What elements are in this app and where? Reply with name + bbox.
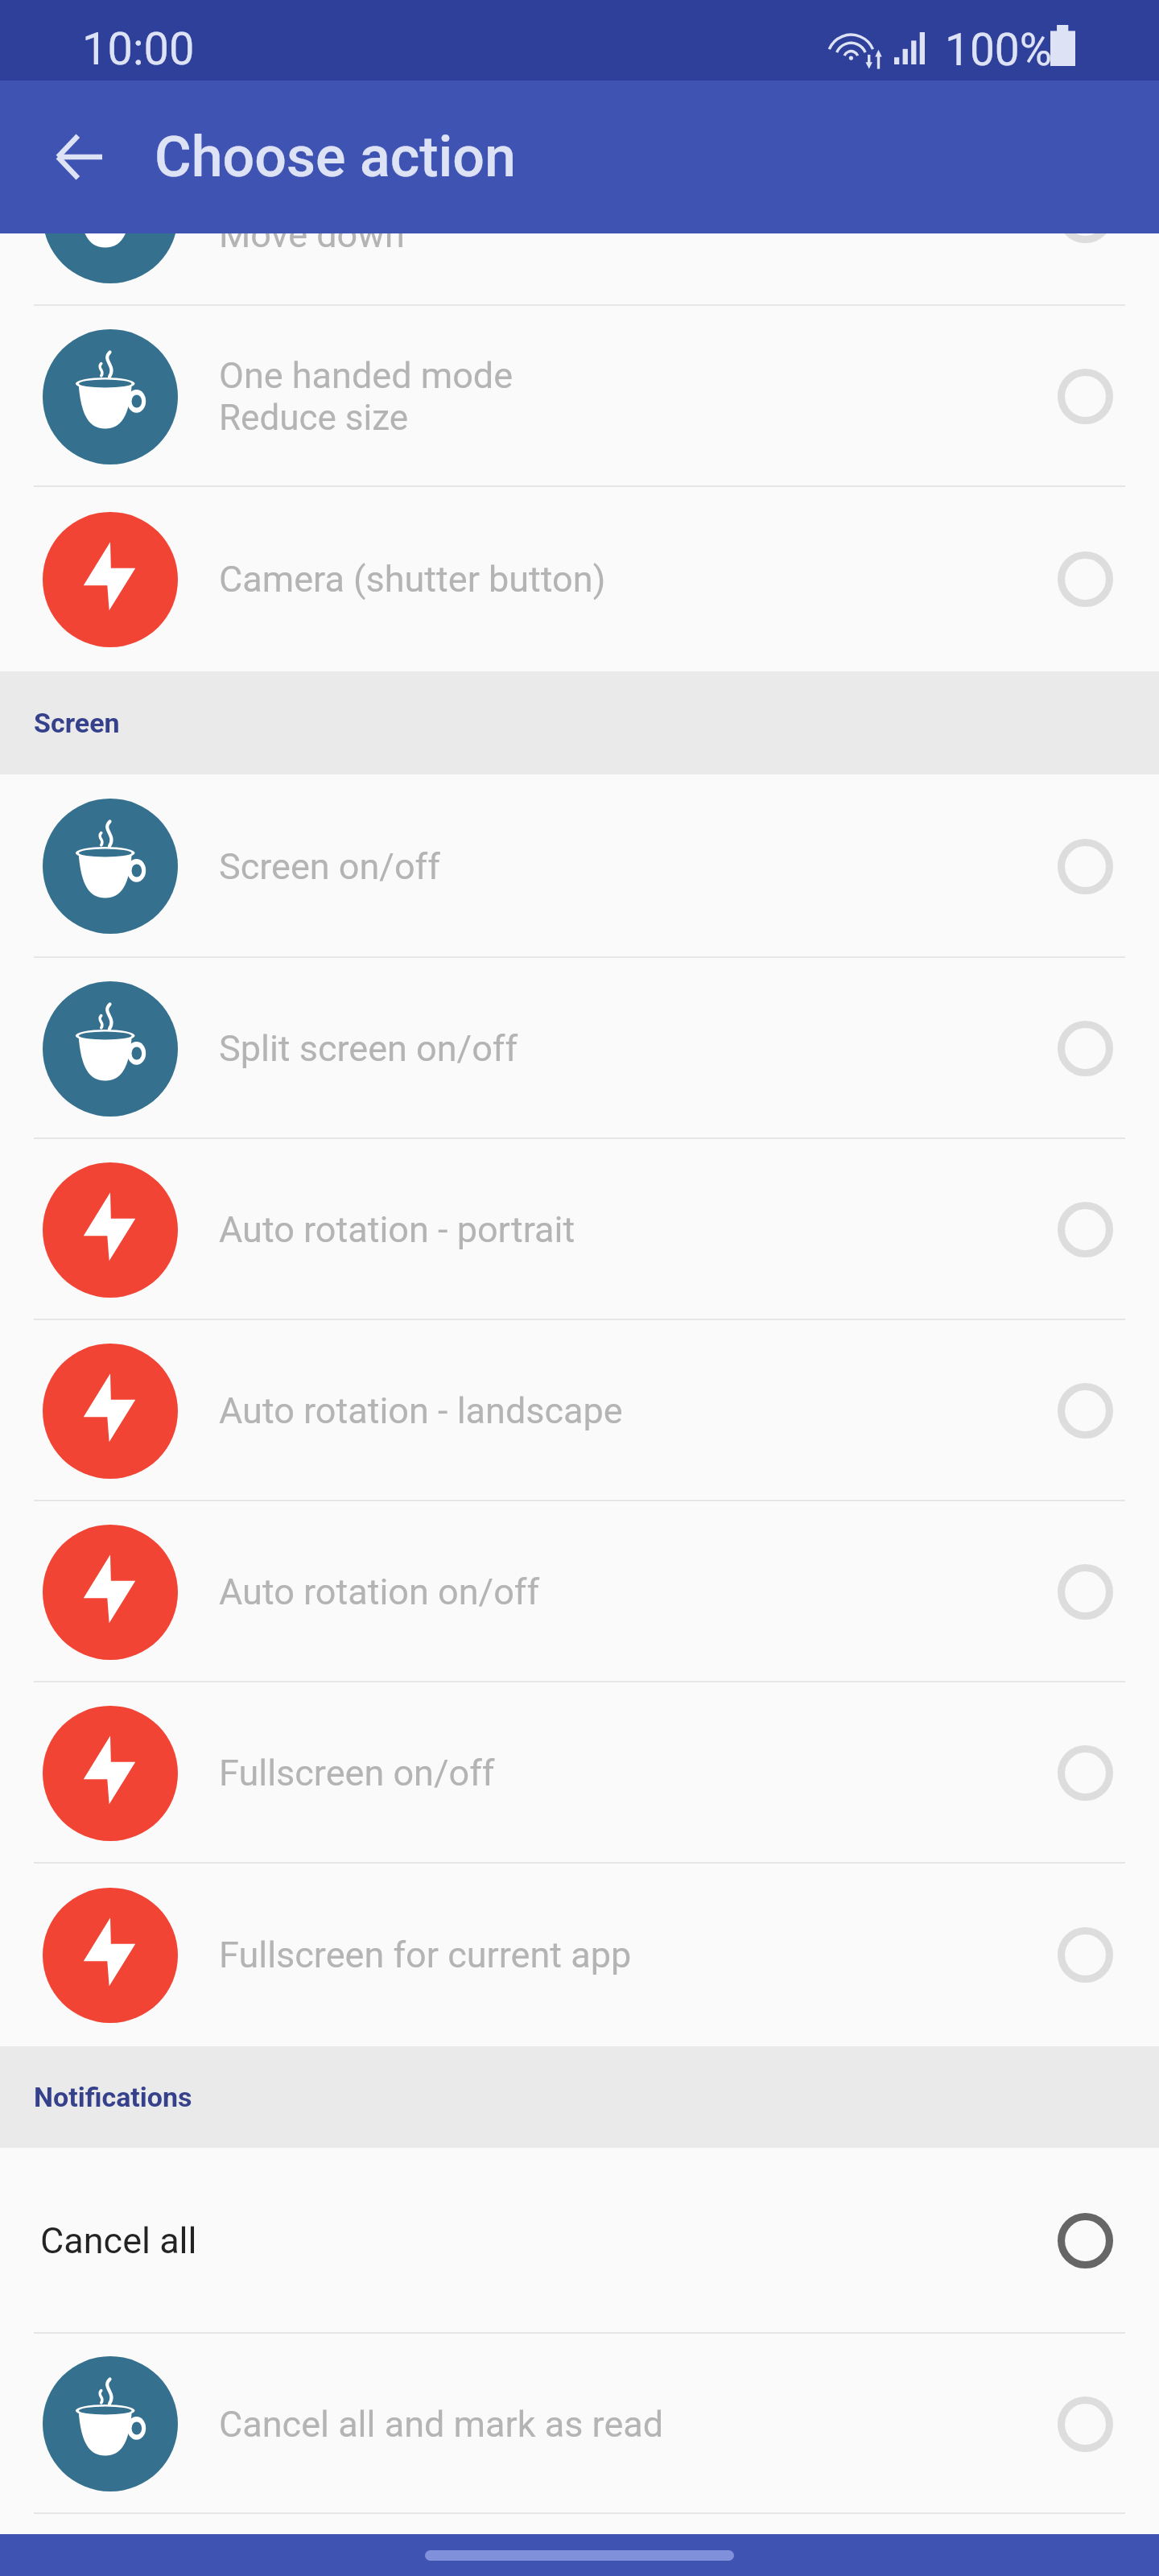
button[interactable]: Camera (shutter button)	[0, 487, 1159, 671]
staticText: Camera (shutter button)	[219, 558, 606, 601]
staticText: Cancel all and mark as read	[219, 2403, 664, 2446]
staticText: Cancel all	[40, 2219, 197, 2262]
staticText: One handed mode	[219, 354, 514, 397]
staticText: Split screen on/off	[219, 1027, 518, 1070]
staticText: Choose action	[155, 124, 517, 190]
staticText: Auto rotation on/off	[219, 1571, 540, 1613]
button[interactable]: Auto rotation - portrait	[0, 1139, 1159, 1320]
staticText: Reduce size	[219, 397, 409, 439]
button[interactable]: Cancel all	[0, 2148, 1159, 2334]
button[interactable]: Auto rotation on/off	[0, 1501, 1159, 1682]
staticText: Move down	[219, 233, 405, 256]
staticText: 100%	[945, 24, 1053, 76]
button[interactable]: One handed mode	[0, 306, 1159, 487]
staticText: 10:00	[82, 23, 195, 76]
button[interactable]: Split screen on/off	[0, 958, 1159, 1139]
staticText: Auto rotation - portrait	[219, 1208, 575, 1251]
staticText: Notifications	[34, 2081, 192, 2113]
staticText: Fullscreen on/off	[219, 1752, 495, 1794]
button[interactable]: Fullscreen for current app	[0, 1864, 1159, 2046]
staticText: Screen	[34, 707, 120, 739]
staticText: Auto rotation - landscape	[219, 1389, 623, 1432]
staticText: Screen on/off	[219, 845, 440, 888]
button[interactable]: Cancel all and mark as read	[0, 2334, 1159, 2514]
button[interactable]: Screen on/off	[0, 774, 1159, 958]
button[interactable]: Fullscreen on/off	[0, 1682, 1159, 1864]
button[interactable]: Move down	[0, 233, 1159, 306]
staticText: Fullscreen for current app	[219, 1934, 632, 1976]
button[interactable]: Auto rotation - landscape	[0, 1320, 1159, 1501]
button[interactable]: Back	[40, 118, 118, 196]
